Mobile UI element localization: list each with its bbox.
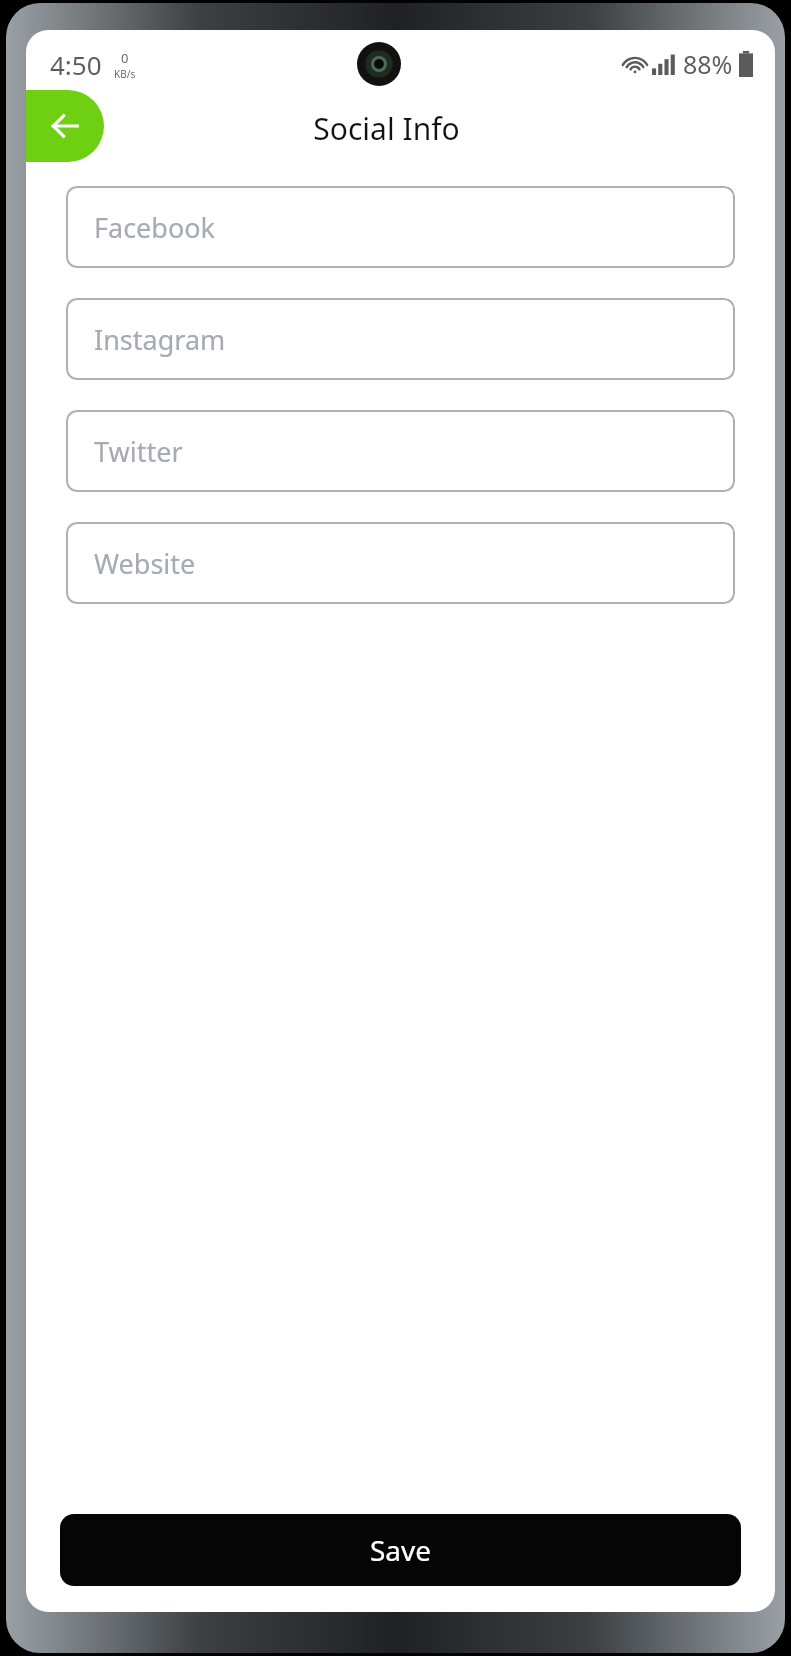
staticText: 88% (683, 47, 733, 81)
button[interactable]: Website (66, 522, 735, 604)
staticText: Save (370, 1531, 432, 1569)
staticText: 4:50 (50, 47, 102, 82)
staticText: Social Info (313, 108, 460, 149)
button[interactable]: Back (26, 90, 104, 162)
staticText: Website (94, 545, 196, 582)
button[interactable]: Instagram (66, 298, 735, 380)
button[interactable]: Twitter (66, 410, 735, 492)
button[interactable]: Save (60, 1514, 741, 1586)
staticText: Twitter (94, 433, 183, 470)
staticText: 0 (121, 49, 129, 67)
staticText: KB/s (114, 67, 136, 81)
staticText: Instagram (94, 321, 226, 358)
staticText: Facebook (94, 209, 216, 246)
button[interactable]: Facebook (66, 186, 735, 268)
